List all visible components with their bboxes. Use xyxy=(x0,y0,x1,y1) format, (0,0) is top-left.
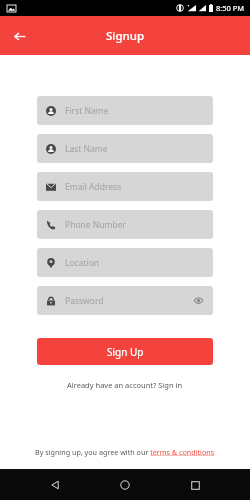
staticText: 8:50 PM xyxy=(216,3,245,13)
button[interactable]: By signing up, you agree with our terms … xyxy=(31,447,219,457)
button[interactable]: Back xyxy=(6,23,32,49)
staticText: By signing up, you agree with our terms … xyxy=(35,447,215,457)
button[interactable]: Recents xyxy=(180,470,210,500)
staticText: Email Address xyxy=(65,181,122,193)
button[interactable]: Already have an account? Sign in xyxy=(61,378,189,392)
button[interactable]: Back xyxy=(40,470,70,500)
button[interactable]: Sign Up xyxy=(37,338,213,365)
staticText: Location xyxy=(65,257,100,269)
staticText: Already have an account? Sign in xyxy=(67,380,183,390)
button[interactable]: Home xyxy=(110,470,140,500)
button[interactable]: Last Name xyxy=(37,134,213,163)
staticText: Signup xyxy=(106,28,145,44)
staticText: First Name xyxy=(65,105,109,117)
button[interactable]: Show password xyxy=(193,295,204,306)
button[interactable]: First Name xyxy=(37,96,213,125)
staticText: Phone Number xyxy=(65,219,126,231)
staticText: Sign Up xyxy=(107,345,144,359)
button[interactable]: Password xyxy=(37,286,213,315)
button[interactable]: Phone Number xyxy=(37,210,213,239)
button[interactable]: Location xyxy=(37,248,213,277)
button[interactable]: Email Address xyxy=(37,172,213,201)
staticText: Password xyxy=(65,295,104,307)
staticText: Last Name xyxy=(65,143,108,155)
